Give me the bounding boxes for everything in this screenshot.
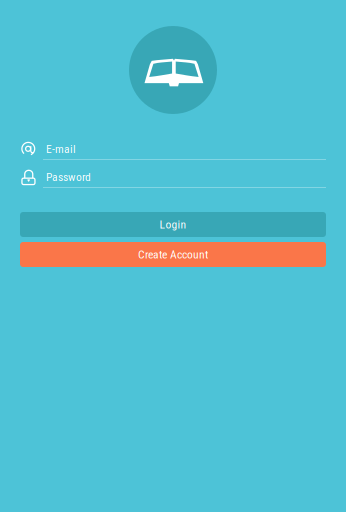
staticText: E-mail: [46, 142, 76, 156]
button[interactable]: Login: [20, 212, 326, 237]
staticText: Create Account: [138, 248, 208, 261]
button[interactable]: Create Account: [20, 242, 326, 267]
staticText: Password: [46, 170, 91, 184]
staticText: Login: [159, 218, 186, 231]
